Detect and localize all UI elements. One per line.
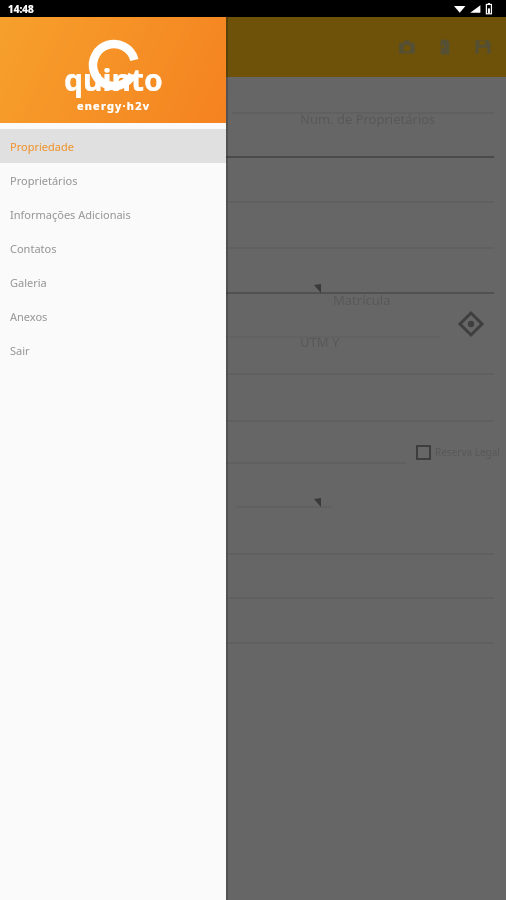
button[interactable]: Documento [432,34,458,60]
staticText: UTM Y [300,333,340,351]
button[interactable]: Contatos [0,231,226,265]
button[interactable]: Sair [0,333,226,367]
staticText: Proprietários [10,173,78,188]
button[interactable]: Propriedade [0,129,226,163]
button[interactable]: Proprietários [0,163,226,197]
staticText: Galeria [10,275,47,290]
staticText: Anexos [10,309,48,324]
button[interactable]: Galeria [0,265,226,299]
staticText: Contatos [10,241,57,256]
button[interactable]: Informações Adicionais [0,197,226,231]
button[interactable]: Tirar foto [394,34,420,60]
staticText: energy·h2v [77,98,151,113]
staticText: Reserva Legal [435,445,500,459]
staticText: 14:48 [8,2,34,16]
staticText: Num. de Proprietários [300,110,436,128]
button[interactable]: Salvar [470,34,496,60]
staticText: quinto [64,59,163,100]
staticText: Matrícula [333,291,391,309]
staticText: Sair [10,343,30,358]
button[interactable]: Anexos [0,299,226,333]
staticText: Propriedade [10,139,74,154]
staticText: Informações Adicionais [10,207,131,222]
